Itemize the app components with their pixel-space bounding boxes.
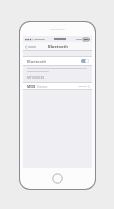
staticText: Device xyxy=(37,84,48,89)
button[interactable]: Bluetooth on xyxy=(81,59,89,63)
staticText: Bluetooth xyxy=(27,59,46,64)
button[interactable]: Bluetooth xyxy=(23,56,92,66)
staticText: Bluetooth xyxy=(48,44,68,49)
button[interactable]: Home xyxy=(52,173,63,184)
button[interactable]: MIDI xyxy=(23,82,92,90)
staticText: MIDI xyxy=(27,84,36,89)
staticText: MY DEVICES xyxy=(27,76,45,80)
button[interactable] xyxy=(24,44,37,50)
